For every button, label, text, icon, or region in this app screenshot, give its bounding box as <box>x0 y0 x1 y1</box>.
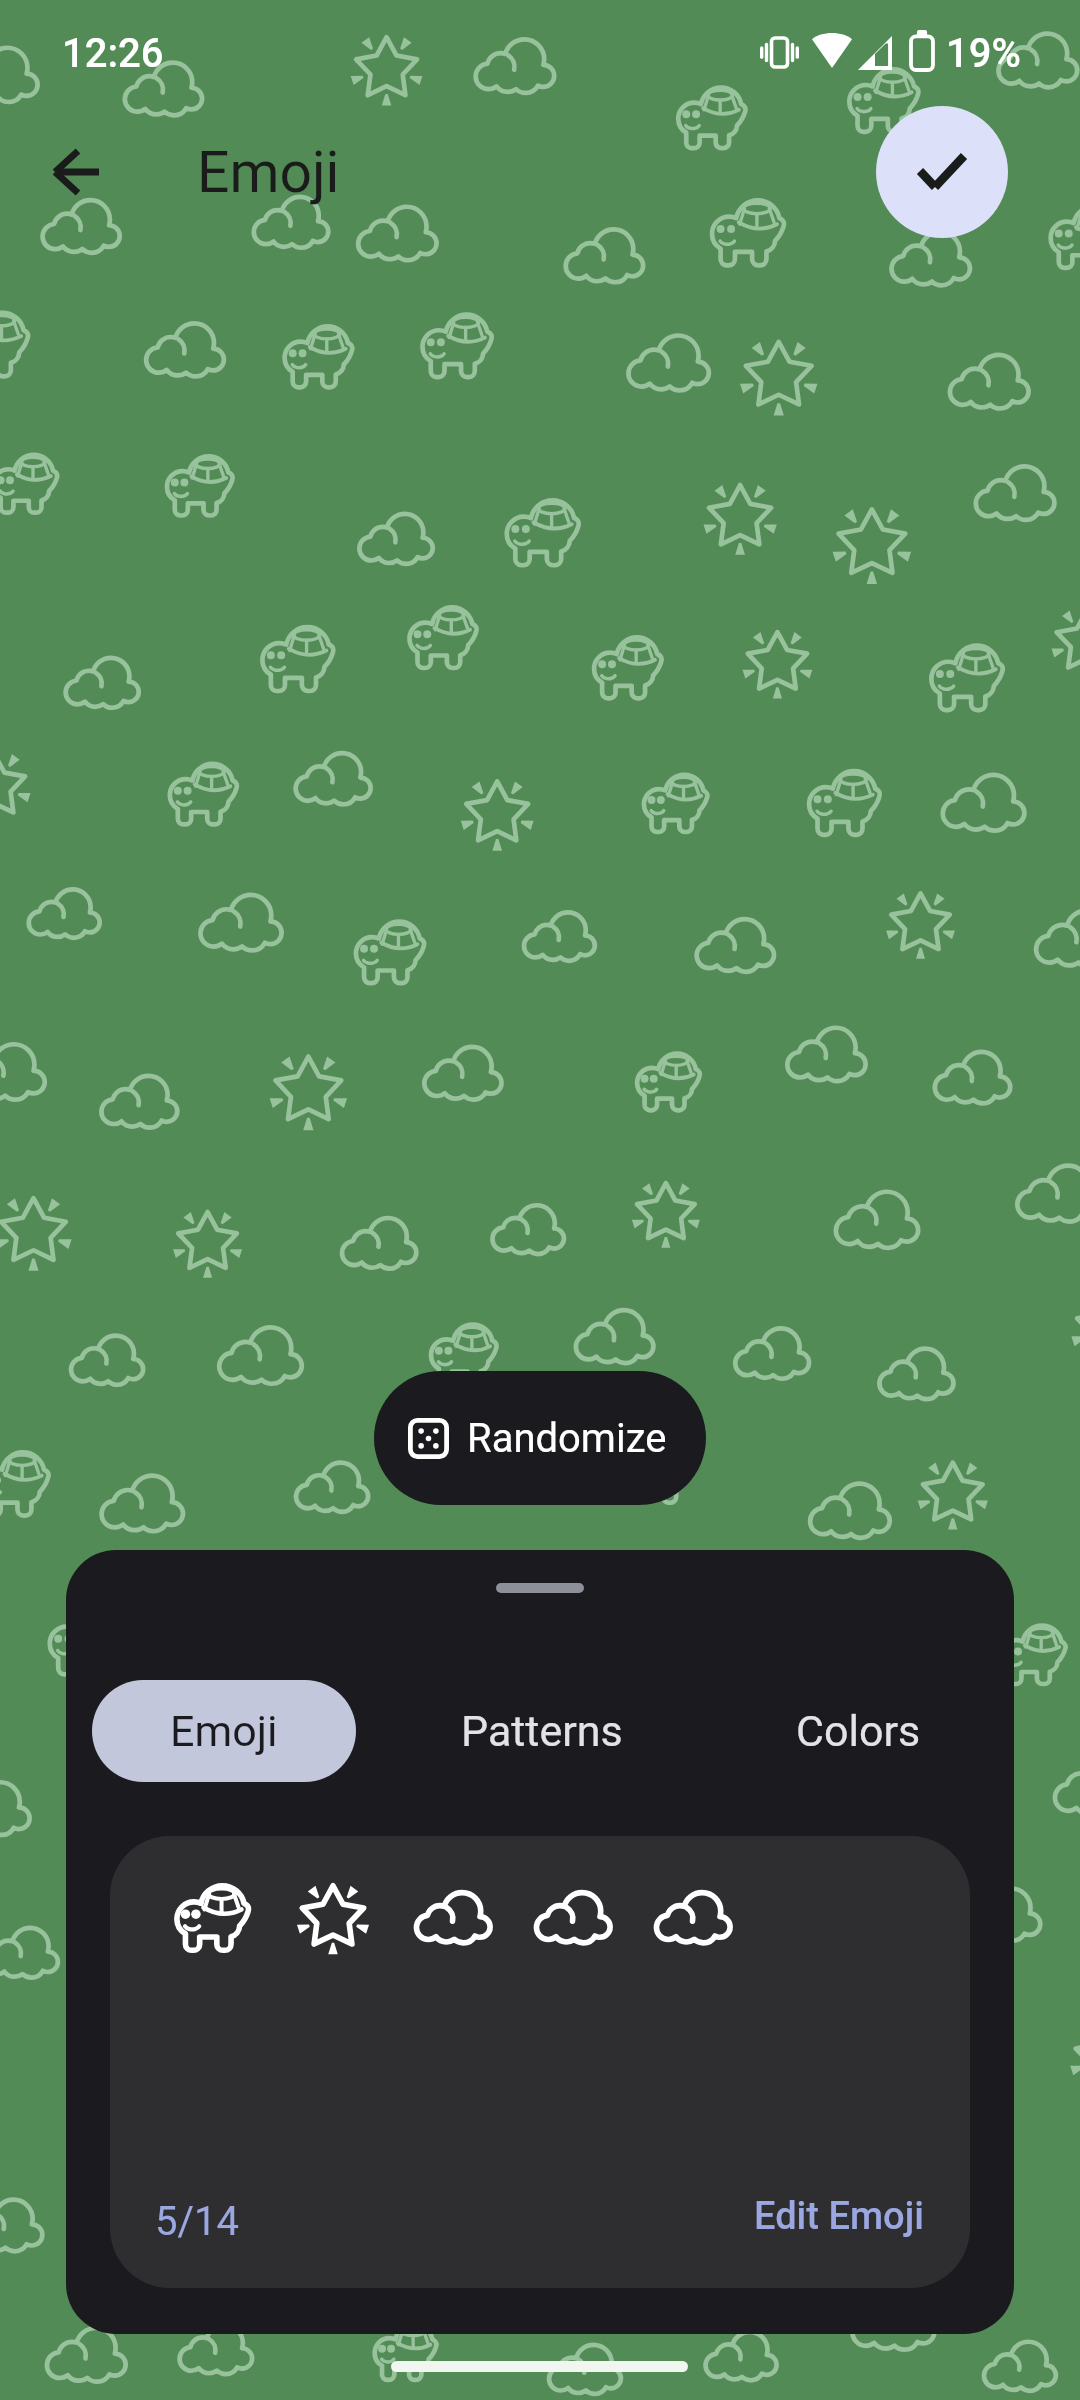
button[interactable] <box>163 1868 263 1968</box>
button[interactable]: Apply <box>876 106 1008 238</box>
staticText: Colors <box>796 1706 921 1756</box>
button[interactable]: Emoji <box>92 1680 356 1782</box>
button[interactable] <box>283 1868 383 1968</box>
button[interactable]: Edit Emoji <box>730 2174 948 2259</box>
button[interactable]: Patterns <box>422 1680 662 1782</box>
staticText: 5/14 <box>155 2198 239 2245</box>
staticText: 12:26 <box>62 30 164 77</box>
staticText: 19% <box>946 30 1021 77</box>
button[interactable]: Back <box>29 124 125 220</box>
staticText: Randomize <box>467 1415 667 1462</box>
button[interactable] <box>403 1868 503 1968</box>
staticText: Emoji <box>170 1706 278 1756</box>
staticText: Emoji <box>197 139 340 206</box>
button[interactable]: Colors <box>738 1680 978 1782</box>
staticText: Patterns <box>461 1706 623 1756</box>
button[interactable] <box>643 1868 743 1968</box>
staticText: Edit Emoji <box>754 2194 924 2239</box>
button[interactable] <box>523 1868 623 1968</box>
button[interactable]: Randomize <box>374 1371 706 1505</box>
